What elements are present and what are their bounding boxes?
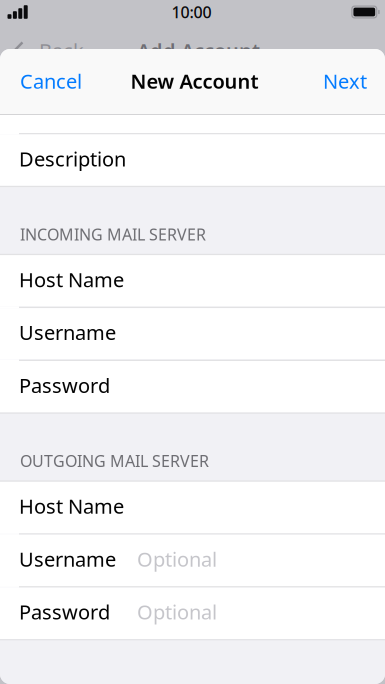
staticText: Back bbox=[39, 37, 84, 64]
staticText: Password bbox=[19, 372, 110, 399]
staticText: INCOMING MAIL SERVER bbox=[20, 224, 206, 245]
button[interactable]: Password bbox=[0, 361, 385, 412]
staticText: Host Name bbox=[19, 493, 124, 519]
button[interactable]: Username bbox=[0, 308, 385, 360]
staticText: Password bbox=[19, 599, 110, 625]
staticText: Username bbox=[19, 319, 116, 346]
staticText: Optional bbox=[137, 546, 217, 572]
staticText: OUTGOING MAIL SERVER bbox=[20, 450, 209, 471]
button[interactable]: Password bbox=[0, 588, 385, 639]
button[interactable]: Username bbox=[0, 535, 385, 586]
staticText: Username bbox=[19, 546, 116, 572]
staticText: Description bbox=[19, 145, 126, 172]
button[interactable]: Host Name bbox=[0, 255, 385, 307]
staticText: Cancel bbox=[20, 68, 82, 94]
button[interactable]: Back bbox=[0, 24, 385, 77]
staticText: New Account bbox=[130, 68, 258, 94]
button[interactable]: Description bbox=[0, 134, 385, 186]
staticText: Optional bbox=[137, 599, 217, 625]
button[interactable]: Host Name bbox=[0, 482, 385, 533]
staticText: 10:00 bbox=[171, 1, 211, 23]
staticText: Add Account bbox=[137, 37, 260, 64]
staticText: Host Name bbox=[19, 266, 124, 293]
button[interactable]: Next bbox=[309, 59, 385, 103]
staticText: Next bbox=[323, 68, 367, 94]
button[interactable]: Cancel bbox=[0, 59, 96, 103]
